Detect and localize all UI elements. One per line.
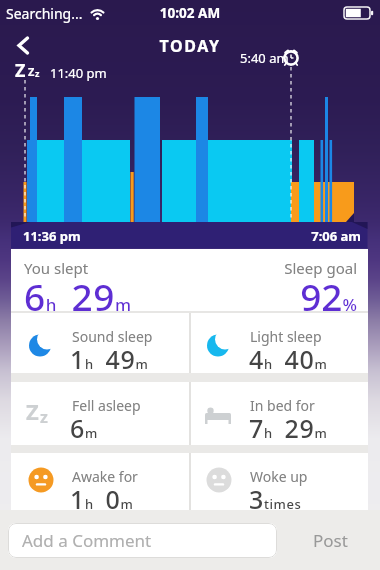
staticText: Sound sleep — [72, 327, 153, 346]
staticText: 11:36 pm — [23, 227, 81, 245]
staticText: 5:40 am — [240, 49, 289, 67]
staticText: TODAY — [0, 35, 380, 57]
staticText: Sleep goal — [11, 258, 357, 278]
staticText: Post — [313, 529, 348, 552]
button[interactable] — [11, 453, 189, 510]
staticText: 7:06 am — [0, 227, 361, 245]
button[interactable]: You slept — [11, 249, 368, 311]
button[interactable] — [190, 382, 368, 445]
button[interactable] — [190, 313, 368, 373]
staticText: Z — [15, 58, 26, 83]
button[interactable] — [8, 32, 42, 60]
button[interactable] — [11, 313, 189, 373]
staticText: 1h 0m — [70, 482, 134, 516]
staticText: z — [40, 406, 48, 428]
staticText: 92% — [11, 271, 357, 321]
staticText: 10:02 AM — [0, 4, 380, 22]
staticText: 6m — [70, 411, 98, 445]
staticText: Searching... — [6, 4, 83, 23]
staticText: You slept — [24, 258, 89, 278]
staticText: 7h 29m — [249, 411, 328, 445]
staticText: 4h 40m — [249, 342, 328, 376]
staticText: 1h 49m — [70, 342, 149, 376]
button[interactable]: Add a Comment — [8, 523, 277, 558]
staticText: In bed for — [250, 396, 315, 415]
staticText: Woke up — [250, 467, 308, 486]
staticText: Awake for — [72, 467, 138, 486]
staticText: Z — [28, 64, 35, 79]
staticText: Z — [26, 396, 39, 426]
staticText: Light sleep — [250, 327, 322, 346]
staticText: 6h 29m — [24, 271, 132, 321]
button[interactable] — [11, 382, 189, 445]
staticText: Add a Comment — [22, 529, 152, 552]
staticText: 11:40 pm — [50, 64, 107, 82]
staticText: 3times — [249, 482, 302, 516]
staticText: Fell asleep — [72, 396, 141, 415]
button[interactable] — [190, 453, 368, 510]
button[interactable]: Post — [300, 518, 360, 562]
staticText: z — [35, 67, 40, 79]
